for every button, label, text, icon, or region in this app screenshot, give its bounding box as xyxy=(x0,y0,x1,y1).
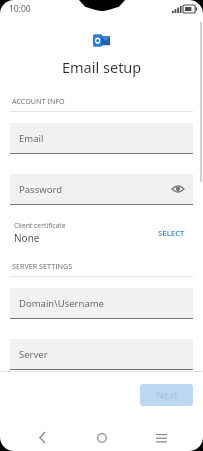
staticText: Password xyxy=(19,183,62,196)
button[interactable]: Show password xyxy=(171,182,185,196)
staticText: ACCOUNT INFO xyxy=(12,96,65,106)
staticText: Email setup xyxy=(62,57,142,77)
staticText: Email xyxy=(19,132,44,145)
button[interactable]: Back xyxy=(25,424,59,451)
button[interactable]: Server xyxy=(10,339,193,370)
staticText: SERVER SETTINGS xyxy=(12,261,73,271)
button[interactable]: Domain\Username xyxy=(10,288,193,319)
staticText: Client certificate xyxy=(14,221,66,230)
button[interactable]: Email xyxy=(10,123,193,154)
button[interactable]: Recent apps xyxy=(144,424,178,451)
button[interactable]: Home xyxy=(85,424,119,451)
button[interactable]: Password xyxy=(10,174,193,205)
staticText: Server xyxy=(19,348,48,361)
staticText: SELECT xyxy=(158,228,185,239)
staticText: Domain\Username xyxy=(19,297,104,310)
staticText: 10:00 xyxy=(9,3,31,15)
button[interactable]: Client certificate xyxy=(14,218,189,248)
button[interactable]: SELECT xyxy=(154,224,189,243)
button[interactable]: Next xyxy=(140,384,193,406)
staticText: Next xyxy=(156,388,178,402)
staticText: None xyxy=(14,231,40,245)
